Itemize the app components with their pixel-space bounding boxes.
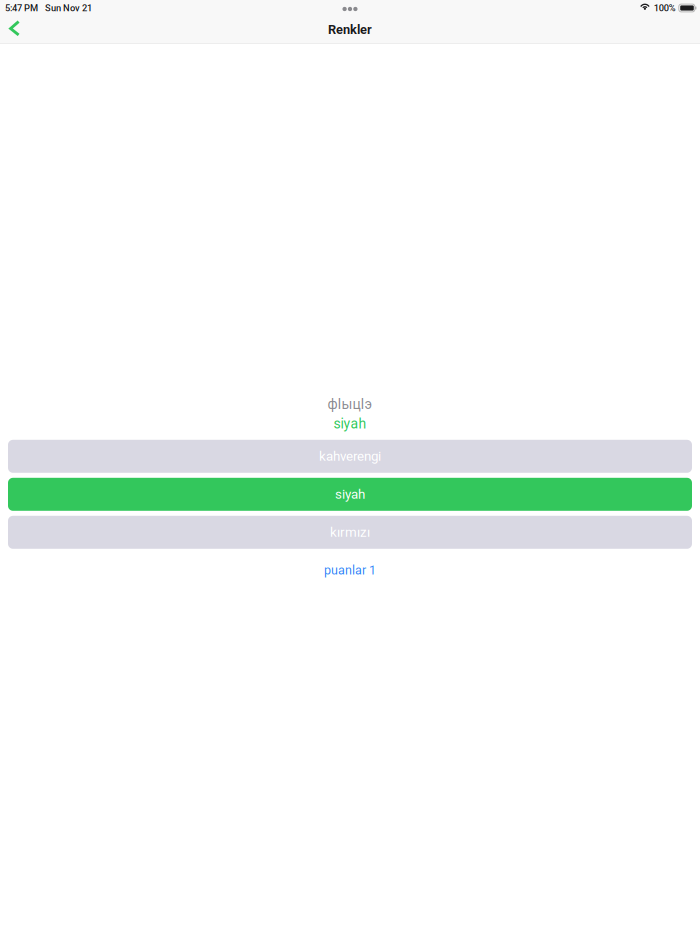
staticText: kırmızı [330, 524, 370, 540]
staticText: 5:47 PM [5, 2, 38, 13]
staticText: Sun Nov 21 [45, 2, 92, 13]
staticText: kahverengi [319, 448, 381, 464]
staticText: siyah [333, 415, 366, 432]
staticText: 100% [654, 2, 676, 13]
staticText: фIыцIэ [327, 396, 372, 412]
button[interactable]: puanlar 1 [324, 563, 376, 577]
staticText: siyah [335, 486, 365, 502]
staticText: Renkler [328, 22, 372, 37]
staticText: puanlar 1 [324, 563, 376, 577]
button[interactable]: kahverengi [8, 440, 692, 473]
button[interactable]: Back [0, 16, 28, 43]
button[interactable]: siyah [8, 478, 692, 511]
